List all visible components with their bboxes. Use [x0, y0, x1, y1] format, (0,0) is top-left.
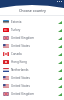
button[interactable]: United Kingdom — [0, 34, 64, 42]
button[interactable]: Hong Kong — [0, 58, 64, 66]
staticText: Estonia — [11, 20, 58, 24]
button[interactable]: United States — [0, 74, 64, 82]
staticText: Netherlands — [11, 68, 58, 72]
button[interactable]: United States — [0, 42, 64, 50]
button[interactable]: Estonia — [0, 18, 64, 26]
button[interactable]: Turkey — [0, 26, 64, 34]
staticText: United Kingdom — [11, 92, 58, 96]
staticText: Choose country — [19, 8, 46, 13]
button[interactable]: Netherlands — [0, 66, 64, 74]
staticText: United States — [11, 44, 58, 48]
button[interactable]: United Kingdom — [0, 90, 64, 98]
staticText: Canada — [11, 52, 58, 56]
staticText: United Kingdom — [11, 36, 58, 40]
button[interactable]: United States — [0, 82, 64, 90]
staticText: United States — [11, 76, 58, 80]
staticText: Hong Kong — [11, 60, 58, 64]
staticText: Turkey — [11, 28, 58, 32]
staticText: United States — [11, 84, 58, 88]
button[interactable]: Canada — [0, 50, 64, 58]
